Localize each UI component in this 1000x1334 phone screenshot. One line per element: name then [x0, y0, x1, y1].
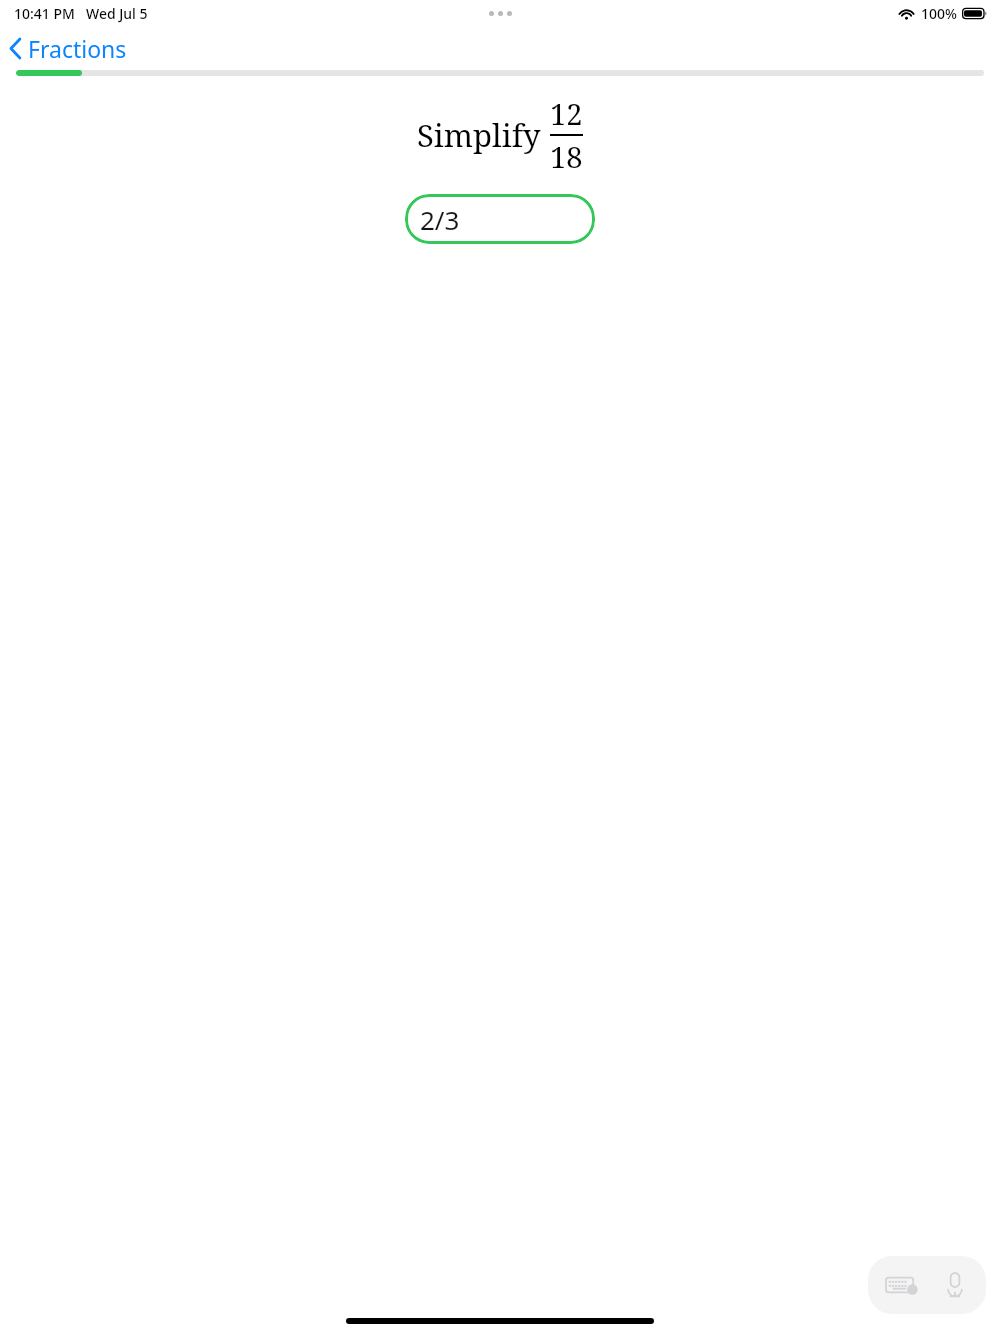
button[interactable]: Switch keyboard	[882, 1268, 924, 1302]
button[interactable]: 2/3	[405, 194, 595, 244]
staticText: 18	[550, 137, 583, 176]
staticText: Simplify	[417, 114, 541, 156]
staticText: 100%	[921, 4, 957, 23]
button[interactable]: Dictate	[938, 1268, 972, 1302]
staticText: Fractions	[28, 33, 127, 64]
button[interactable]: Fractions	[0, 28, 139, 69]
staticText: Wed Jul 5	[86, 4, 148, 23]
staticText: 10:41 PM	[14, 4, 75, 23]
staticText: 2/3	[420, 202, 460, 237]
staticText: 12	[550, 94, 583, 133]
